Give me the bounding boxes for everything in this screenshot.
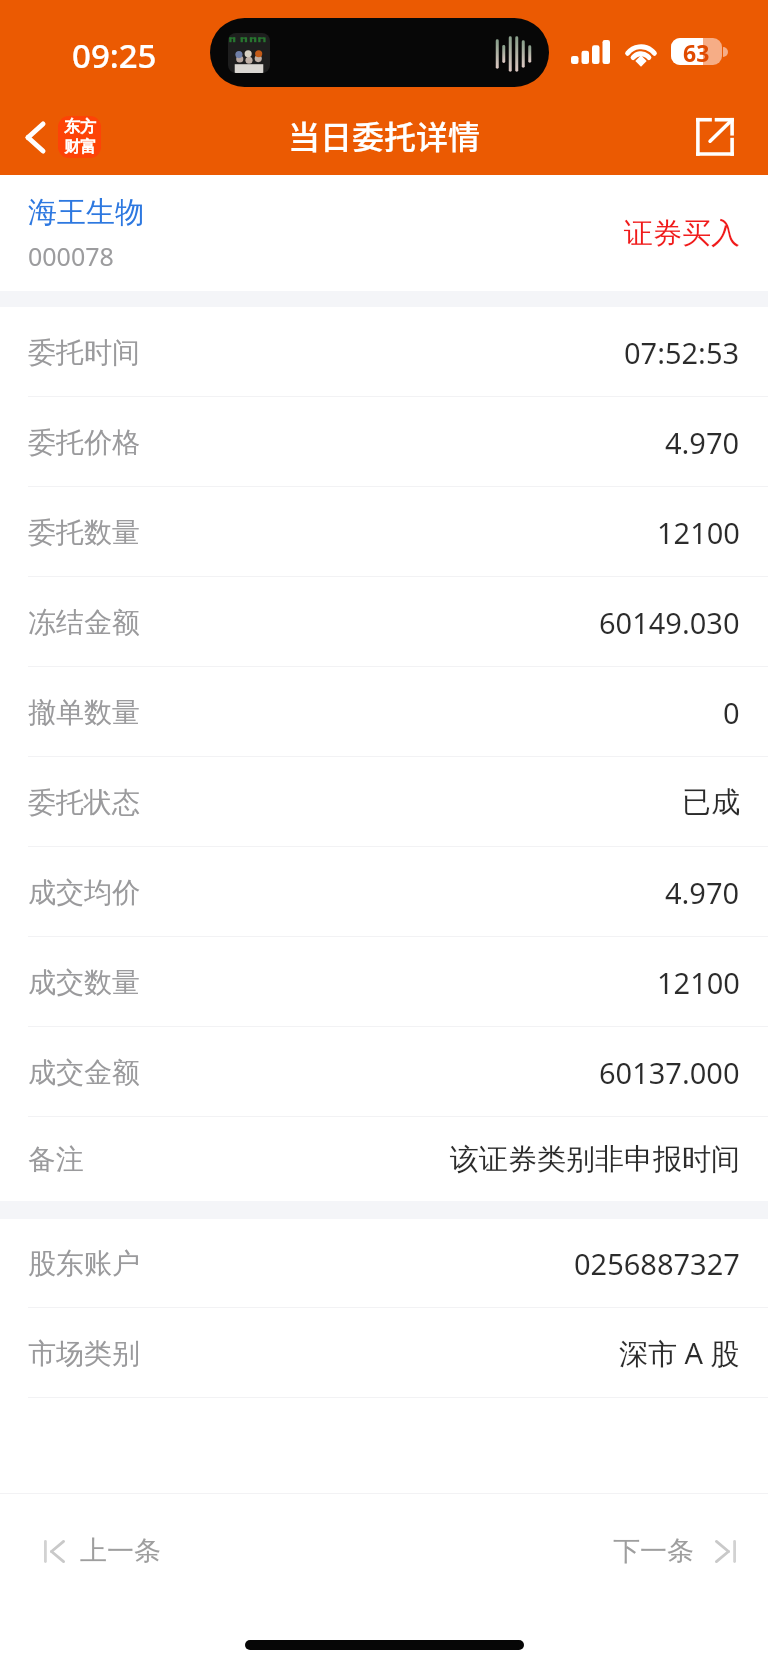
button[interactable]: 股东账户 bbox=[0, 1219, 768, 1308]
staticText: 市场类别 bbox=[28, 1336, 140, 1371]
staticText: 12100 bbox=[657, 513, 740, 552]
staticText: 委托价格 bbox=[28, 425, 140, 460]
staticText: 4.970 bbox=[665, 873, 740, 912]
staticText: 下一条 bbox=[613, 1534, 694, 1568]
button[interactable]: 委托状态 bbox=[0, 757, 768, 847]
button[interactable]: 成交金额 bbox=[0, 1027, 768, 1117]
staticText: 000078 bbox=[28, 239, 114, 273]
staticText: 证券买入 bbox=[624, 215, 740, 252]
button[interactable]: 委托数量 bbox=[0, 487, 768, 577]
staticText: 成交数量 bbox=[28, 965, 140, 1000]
button[interactable]: 冻结金额 bbox=[0, 577, 768, 667]
button[interactable]: 海王生物 bbox=[0, 175, 768, 291]
staticText: 东方 bbox=[64, 117, 96, 137]
staticText: 60137.000 bbox=[599, 1053, 740, 1092]
staticText: 当日委托详情 bbox=[288, 112, 481, 158]
staticText: 财富 bbox=[64, 137, 96, 157]
staticText: 冻结金额 bbox=[28, 605, 140, 640]
staticText: 09:25 bbox=[72, 33, 157, 78]
button[interactable]: 成交均价 bbox=[0, 847, 768, 937]
staticText: 4.970 bbox=[665, 423, 740, 462]
staticText: 股东账户 bbox=[28, 1246, 140, 1281]
staticText: 该证券类别非申报时间 bbox=[450, 1141, 740, 1178]
staticText: 委托状态 bbox=[28, 785, 140, 820]
button[interactable]: 撤单数量 bbox=[0, 667, 768, 757]
staticText: 委托时间 bbox=[28, 335, 140, 370]
staticText: 深市 A 股 bbox=[619, 1333, 740, 1373]
staticText: 成交金额 bbox=[28, 1055, 140, 1090]
staticText: 备注 bbox=[28, 1142, 84, 1177]
button[interactable]: 上一条 bbox=[0, 1518, 185, 1584]
button[interactable]: 市场类别 bbox=[0, 1308, 768, 1398]
button[interactable]: 下一条 bbox=[589, 1518, 768, 1584]
staticText: 0 bbox=[723, 693, 740, 732]
button[interactable]: 备注 bbox=[0, 1117, 768, 1201]
staticText: 海王生物 bbox=[28, 194, 144, 231]
staticText: 委托数量 bbox=[28, 515, 140, 550]
staticText: 07:52:53 bbox=[624, 333, 740, 372]
button[interactable]: 成交数量 bbox=[0, 937, 768, 1027]
button[interactable]: Back to 东方财富 bbox=[0, 108, 115, 166]
staticText: 0256887327 bbox=[574, 1244, 740, 1283]
staticText: 上一条 bbox=[80, 1534, 161, 1568]
staticText: 撤单数量 bbox=[28, 695, 140, 730]
staticText: 12100 bbox=[657, 963, 740, 1002]
button[interactable]: 委托时间 bbox=[0, 307, 768, 397]
button[interactable]: Share bbox=[679, 103, 768, 170]
staticText: 63 bbox=[683, 38, 710, 64]
button[interactable]: 委托价格 bbox=[0, 397, 768, 487]
staticText: 60149.030 bbox=[599, 603, 740, 642]
staticText: 成交均价 bbox=[28, 875, 140, 910]
staticText: 已成 bbox=[682, 784, 740, 821]
